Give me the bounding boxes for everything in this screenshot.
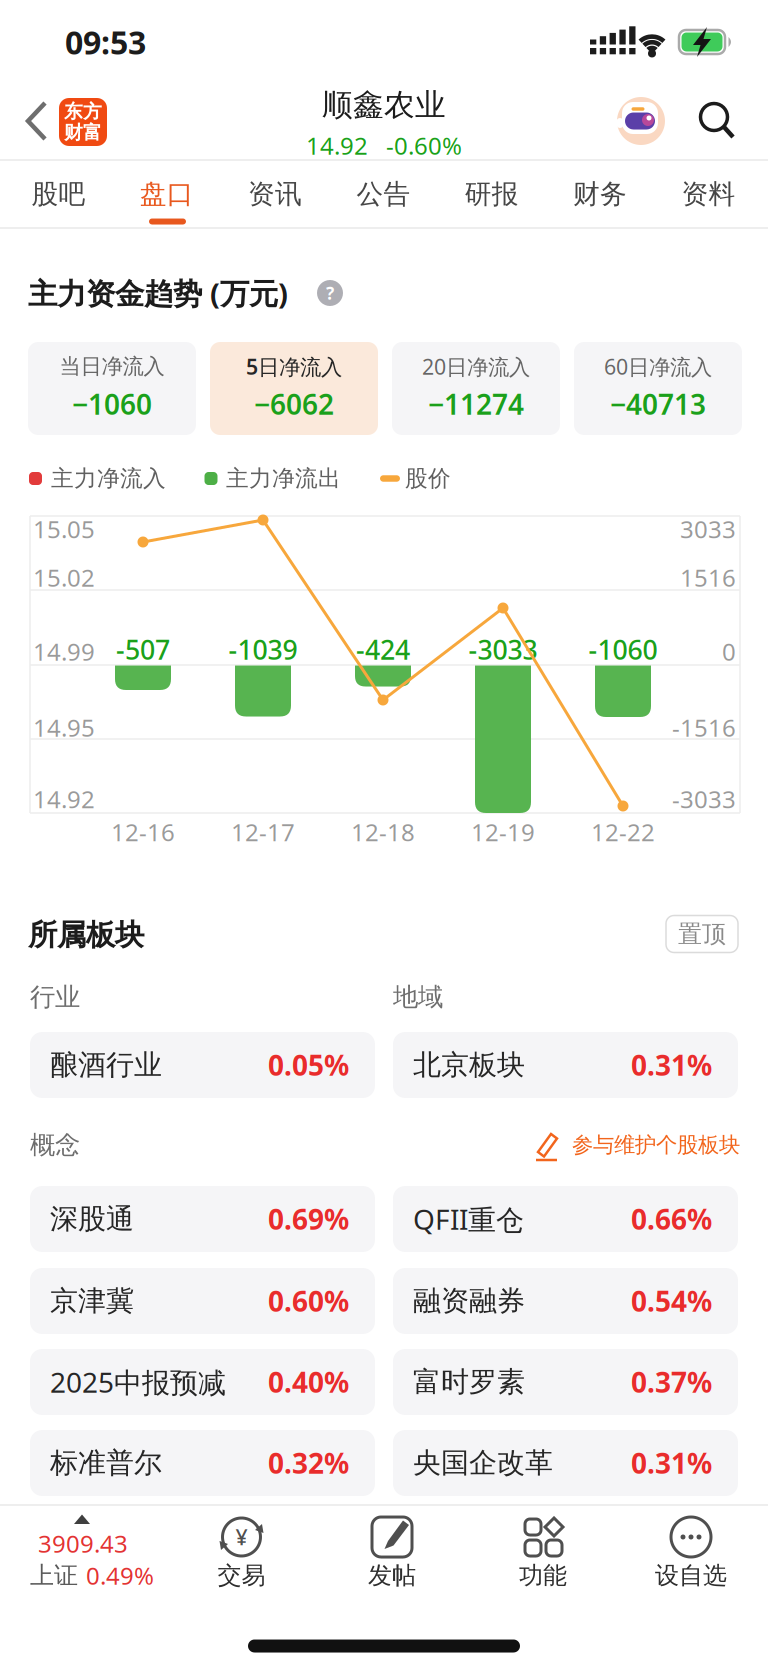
- staticText: 北京板块: [413, 1048, 525, 1082]
- staticText: 主力净流入: [51, 465, 166, 492]
- button[interactable]: 京津冀: [30, 1268, 375, 1334]
- staticText: 0.31%: [631, 1046, 712, 1084]
- button[interactable]: 公告: [333, 163, 433, 225]
- button[interactable]: 置顶: [666, 915, 738, 952]
- button[interactable]: 60日净流入: [574, 342, 742, 435]
- button[interactable]: 富时罗素: [393, 1349, 738, 1415]
- button[interactable]: 返回: [0, 0, 768, 1663]
- button[interactable]: 融资融券: [393, 1268, 738, 1334]
- staticText: 0: [722, 636, 736, 667]
- button[interactable]: 参与维护个股板块: [0, 0, 768, 1663]
- staticText: 2025中报预减: [50, 1363, 226, 1401]
- staticText: 资料: [681, 178, 735, 210]
- button[interactable]: 搜索: [0, 0, 768, 1663]
- staticText: 12-19: [471, 816, 535, 848]
- staticText: 盘口: [140, 178, 194, 210]
- button[interactable]: 标准普尔: [30, 1430, 375, 1496]
- staticText: -507: [116, 632, 170, 667]
- staticText: 0.54%: [631, 1282, 712, 1320]
- button[interactable]: 上证指数: [0, 0, 768, 1663]
- button[interactable]: 深股通: [30, 1186, 375, 1252]
- button[interactable]: 当日净流入: [28, 342, 196, 435]
- button[interactable]: 酿酒行业: [30, 1032, 375, 1098]
- staticText: 20日净流入: [422, 352, 530, 381]
- button[interactable]: 股吧: [8, 163, 108, 225]
- button[interactable]: 帮助: [317, 280, 343, 306]
- staticText: 标准普尔: [50, 1446, 162, 1480]
- staticText: -1516: [672, 712, 736, 743]
- staticText: 15.05: [33, 513, 95, 545]
- staticText: -424: [356, 632, 410, 667]
- button[interactable]: 发帖: [0, 0, 768, 1663]
- staticText: 12-18: [351, 816, 415, 848]
- staticText: 股价: [405, 465, 451, 492]
- button[interactable]: 设自选: [0, 0, 768, 1663]
- button[interactable]: 东方财富: [59, 98, 107, 146]
- staticText: 深股通: [50, 1202, 134, 1236]
- staticText: 15.02: [33, 562, 95, 593]
- staticText: 参与维护个股板块: [572, 1132, 740, 1158]
- staticText: 3033: [680, 513, 736, 545]
- button[interactable]: 资讯: [225, 163, 325, 225]
- staticText: 3909.43: [38, 1528, 128, 1559]
- button[interactable]: 财务: [550, 163, 650, 225]
- staticText: 财富: [64, 121, 102, 144]
- button[interactable]: 盘口: [117, 163, 217, 225]
- staticText: 主力净流出: [226, 465, 341, 492]
- staticText: 1516: [680, 562, 736, 593]
- staticText: ¥: [235, 1523, 247, 1551]
- staticText: 资讯: [248, 178, 302, 210]
- staticText: 东方: [64, 100, 102, 123]
- staticText: 功能: [519, 1561, 567, 1590]
- button[interactable]: QFII重仓: [393, 1186, 738, 1252]
- staticText: −1060: [72, 385, 152, 423]
- staticText: 当日净流入: [59, 353, 164, 380]
- staticText: 财务: [573, 178, 627, 210]
- staticText: 0.40%: [268, 1363, 349, 1401]
- button[interactable]: 资料: [658, 163, 758, 225]
- staticText: 60日净流入: [604, 352, 712, 381]
- staticText: QFII重仓: [413, 1200, 524, 1238]
- button[interactable]: 5日净流入: [210, 342, 378, 435]
- button[interactable]: 2025中报预减: [30, 1349, 375, 1415]
- button[interactable]: 央国企改革: [393, 1430, 738, 1496]
- staticText: 0.49%: [86, 1560, 154, 1591]
- staticText: -1039: [228, 632, 297, 667]
- staticText: 设自选: [655, 1561, 727, 1590]
- staticText: 行业: [30, 981, 80, 1012]
- staticText: 0.31%: [631, 1444, 712, 1482]
- staticText: −11274: [428, 385, 524, 423]
- staticText: 5日净流入: [246, 352, 342, 381]
- staticText: 置顶: [678, 919, 726, 949]
- button[interactable]: 交易: [0, 0, 768, 1663]
- button[interactable]: 研报: [442, 163, 542, 225]
- staticText: 0.69%: [268, 1200, 349, 1238]
- staticText: 交易: [217, 1561, 265, 1590]
- staticText: 14.95: [33, 712, 95, 743]
- button[interactable]: 功能: [0, 0, 768, 1663]
- staticText: 所属板块: [28, 917, 144, 953]
- staticText: -3033: [672, 783, 736, 815]
- staticText: 酿酒行业: [50, 1048, 162, 1082]
- staticText: 14.92 -0.60%: [306, 130, 462, 161]
- staticText: 上证: [30, 1561, 78, 1590]
- staticText: 顺鑫农业: [322, 86, 446, 124]
- staticText: 09:53: [65, 21, 146, 63]
- staticText: 融资融券: [413, 1284, 525, 1318]
- staticText: 12-16: [111, 816, 175, 848]
- button[interactable]: 智能助手: [617, 97, 665, 145]
- staticText: 发帖: [368, 1561, 416, 1590]
- staticText: 0.32%: [268, 1444, 349, 1482]
- staticText: 14.92: [33, 783, 95, 815]
- button[interactable]: 20日净流入: [392, 342, 560, 435]
- staticText: ?: [326, 281, 334, 304]
- staticText: 12-17: [231, 816, 295, 848]
- staticText: 概念: [30, 1129, 80, 1160]
- staticText: 京津冀: [50, 1284, 134, 1318]
- button[interactable]: 北京板块: [393, 1032, 738, 1098]
- staticText: -3033: [468, 632, 537, 667]
- staticText: −6062: [254, 385, 334, 423]
- staticText: 富时罗素: [413, 1365, 525, 1399]
- staticText: 14.99: [33, 636, 95, 667]
- staticText: -1060: [588, 632, 657, 667]
